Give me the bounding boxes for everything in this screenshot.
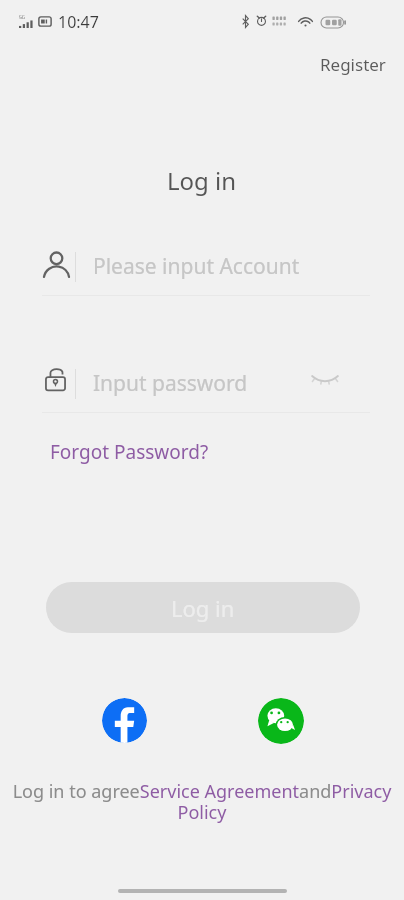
button[interactable]: Log in with WeChat [258,698,304,744]
staticText: Please input Account [93,252,300,281]
staticText: 10:47 [58,11,99,33]
staticText: Forgot Password? [50,439,209,465]
button[interactable]: Register [304,43,402,86]
staticText: Log in [167,164,237,197]
button[interactable]: Log in with Facebook [102,698,147,743]
button[interactable]: Show password [306,361,344,399]
staticText: Log in to agreeService AgreementandPriva… [4,779,400,825]
staticText: Register [320,53,386,76]
staticText: Input password [93,369,248,398]
staticText: Log in [171,593,235,623]
button[interactable]: Log in [46,582,360,633]
button[interactable]: Forgot Password? [40,432,219,472]
